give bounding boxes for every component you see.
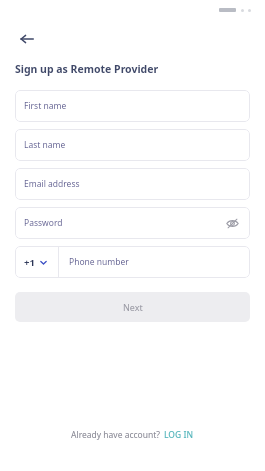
staticText: Password bbox=[24, 217, 63, 229]
staticText: LOG IN bbox=[164, 429, 194, 441]
staticText: +1 bbox=[24, 256, 35, 269]
button[interactable]: Back bbox=[14, 26, 40, 52]
button[interactable]: Email address bbox=[15, 168, 250, 200]
staticText: Email address bbox=[24, 178, 80, 190]
button[interactable]: Password bbox=[15, 207, 250, 239]
staticText: Last name bbox=[24, 139, 66, 151]
button[interactable]: Last name bbox=[15, 129, 250, 161]
button[interactable]: Next bbox=[15, 292, 250, 322]
staticText: Sign up as Remote Provider bbox=[15, 62, 159, 76]
staticText: Next bbox=[123, 301, 143, 313]
staticText: First name bbox=[24, 100, 67, 112]
staticText: Already have account? bbox=[71, 429, 160, 441]
staticText: Phone number bbox=[69, 256, 129, 268]
button[interactable]: LOG IN bbox=[164, 429, 194, 441]
button[interactable]: Phone number bbox=[59, 246, 250, 278]
button[interactable]: Show password bbox=[223, 214, 241, 232]
button[interactable]: +1 bbox=[15, 246, 58, 278]
button[interactable]: First name bbox=[15, 90, 250, 122]
